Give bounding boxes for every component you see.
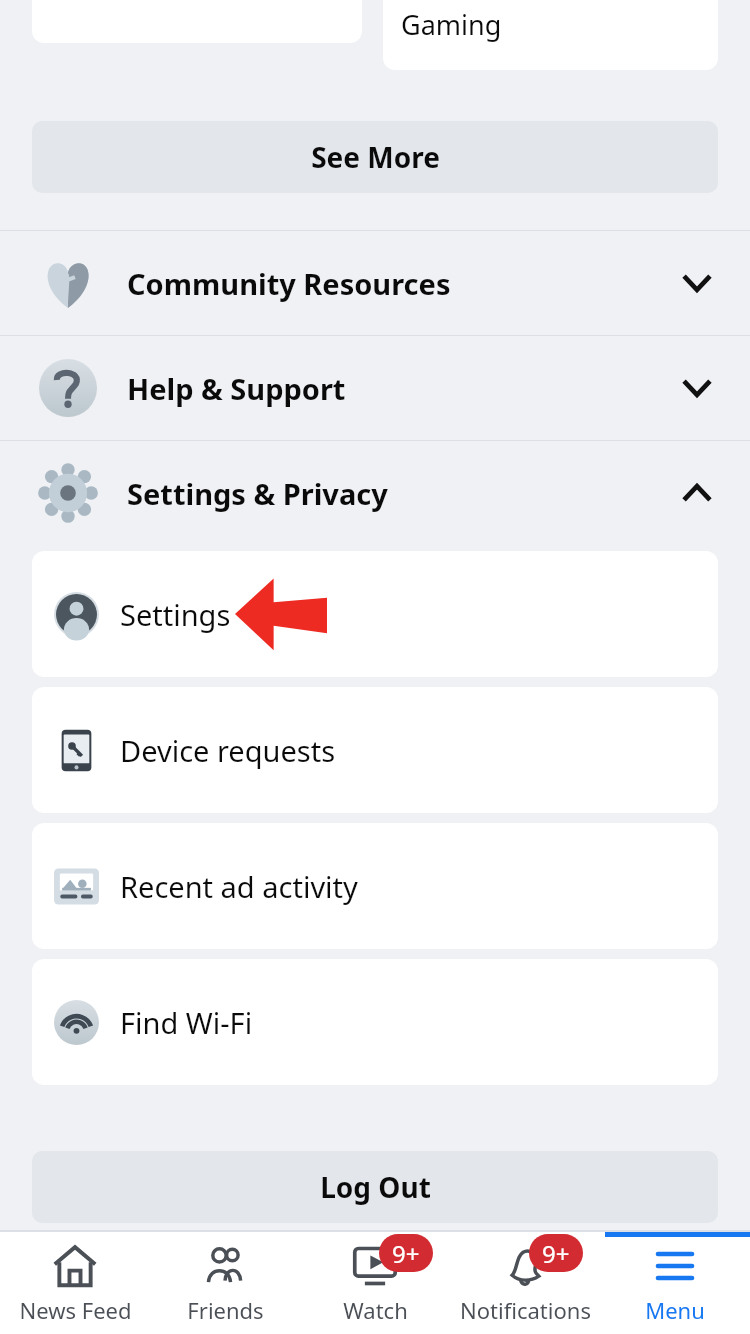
staticText: Help & Support bbox=[127, 369, 346, 408]
staticText: Device requests bbox=[120, 731, 336, 770]
button[interactable]: Settings bbox=[32, 551, 718, 677]
other: Watch bbox=[352, 1243, 398, 1289]
button[interactable]: Settings & Privacy bbox=[0, 441, 750, 545]
staticText: Find Wi-Fi bbox=[120, 1003, 253, 1042]
button[interactable]: Help & Support bbox=[0, 336, 750, 440]
button[interactable]: Recent ad activity bbox=[32, 823, 718, 949]
staticText: Friends bbox=[187, 1295, 264, 1325]
staticText: Recent ad activity bbox=[120, 867, 358, 906]
staticText: Settings & Privacy bbox=[127, 474, 388, 513]
staticText: Notifications bbox=[460, 1295, 591, 1325]
other: News Feed bbox=[52, 1243, 98, 1289]
staticText: Community Resources bbox=[127, 264, 451, 303]
staticText: News Feed bbox=[19, 1295, 132, 1325]
staticText: 9+ bbox=[392, 1237, 420, 1270]
staticText: Gaming bbox=[401, 6, 502, 43]
button[interactable]: Friends bbox=[150, 1232, 300, 1334]
button[interactable]: Device requests bbox=[32, 687, 718, 813]
button[interactable]: News Feed bbox=[0, 1232, 150, 1334]
button[interactable]: Community Resources bbox=[0, 231, 750, 335]
button[interactable]: Gaming bbox=[383, 0, 718, 70]
button[interactable]: Menu bbox=[600, 1232, 750, 1334]
other: Menu bbox=[652, 1243, 698, 1289]
button[interactable]: Log Out bbox=[32, 1151, 718, 1223]
staticText: Settings bbox=[120, 595, 231, 634]
staticText: Menu bbox=[645, 1295, 705, 1325]
button[interactable]: Notifications bbox=[450, 1232, 600, 1334]
button[interactable]: Watch bbox=[300, 1232, 450, 1334]
staticText: Log Out bbox=[320, 1168, 431, 1206]
staticText: See More bbox=[311, 138, 440, 176]
button[interactable]: Find Wi-Fi bbox=[32, 959, 718, 1085]
other: Notifications bbox=[502, 1243, 548, 1289]
other: Friends bbox=[202, 1243, 248, 1289]
button[interactable]: See More bbox=[32, 121, 718, 193]
staticText: 9+ bbox=[542, 1237, 570, 1270]
staticText: Watch bbox=[343, 1295, 408, 1325]
